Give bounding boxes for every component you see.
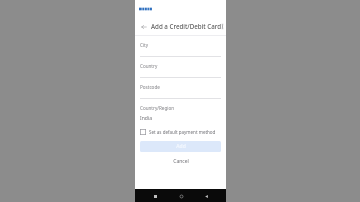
staticText: Country [140,63,158,69]
button[interactable]: Postcode [135,84,226,105]
button[interactable]: City [135,42,226,63]
staticText: Add [176,143,186,150]
staticText: Postcode [140,84,160,90]
button[interactable]: Add [140,141,221,152]
button[interactable]: Home [176,191,186,201]
staticText: India [140,115,152,122]
button[interactable]: Recents [150,191,160,201]
button[interactable]: Back [201,191,211,201]
button[interactable]: Set as default payment method [135,128,226,136]
staticText: Cancel [173,158,189,165]
button[interactable]: Back [138,21,149,32]
staticText: Add a Credit/Debit Card [151,22,222,30]
button[interactable]: Country/Region [135,105,226,125]
button[interactable]: Cancel [140,156,221,166]
staticText: Country/Region [140,105,175,111]
button[interactable]: Close [222,21,223,32]
button[interactable]: Brand logo [139,6,156,12]
staticText: City [140,42,149,48]
button[interactable]: Country [135,63,226,84]
staticText: Set as default payment method [149,129,216,135]
